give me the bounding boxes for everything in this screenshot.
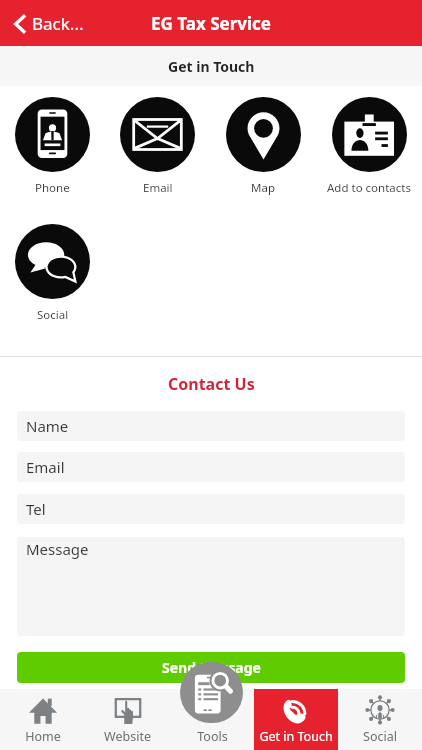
staticText: Map	[251, 180, 275, 196]
button[interactable]: Add to contacts	[316, 86, 422, 213]
staticText: Contact Us	[168, 373, 255, 395]
staticText: Get in Touch	[168, 57, 255, 76]
button[interactable]: Send Message	[17, 652, 405, 683]
button[interactable]: Back...	[10, 8, 88, 39]
button[interactable]: Social	[338, 689, 422, 750]
staticText: Message	[26, 539, 89, 559]
staticText: Phone	[35, 180, 70, 196]
staticText: Name	[26, 416, 69, 436]
button[interactable]: Tools	[180, 662, 243, 723]
staticText: Get in Touch	[259, 728, 333, 745]
staticText: Add to contacts	[327, 180, 411, 196]
button[interactable]: Social	[0, 213, 105, 340]
staticText: Email	[143, 180, 173, 196]
button[interactable]: Email	[17, 452, 405, 482]
staticText: Website	[104, 728, 151, 745]
staticText: Tel	[26, 499, 46, 519]
staticText: Social	[37, 307, 69, 323]
button[interactable]: Message	[17, 537, 405, 636]
button[interactable]: Phone	[0, 86, 105, 213]
button[interactable]: Name	[17, 411, 405, 441]
staticText: EG Tax Service	[151, 12, 271, 35]
staticText: Social	[363, 728, 397, 745]
button[interactable]: Home	[0, 689, 85, 750]
button[interactable]: Website	[85, 689, 170, 750]
staticText: Tools	[197, 728, 228, 745]
button[interactable]: Map	[210, 86, 316, 213]
staticText: Back...	[32, 12, 84, 35]
staticText: Send Message	[162, 658, 261, 677]
button[interactable]: Email	[105, 86, 210, 213]
button[interactable]: Tel	[17, 494, 405, 524]
staticText: Home	[25, 728, 61, 745]
button[interactable]: Tools	[170, 689, 254, 750]
staticText: Email	[26, 457, 65, 477]
button[interactable]: Get in Touch	[254, 689, 338, 750]
